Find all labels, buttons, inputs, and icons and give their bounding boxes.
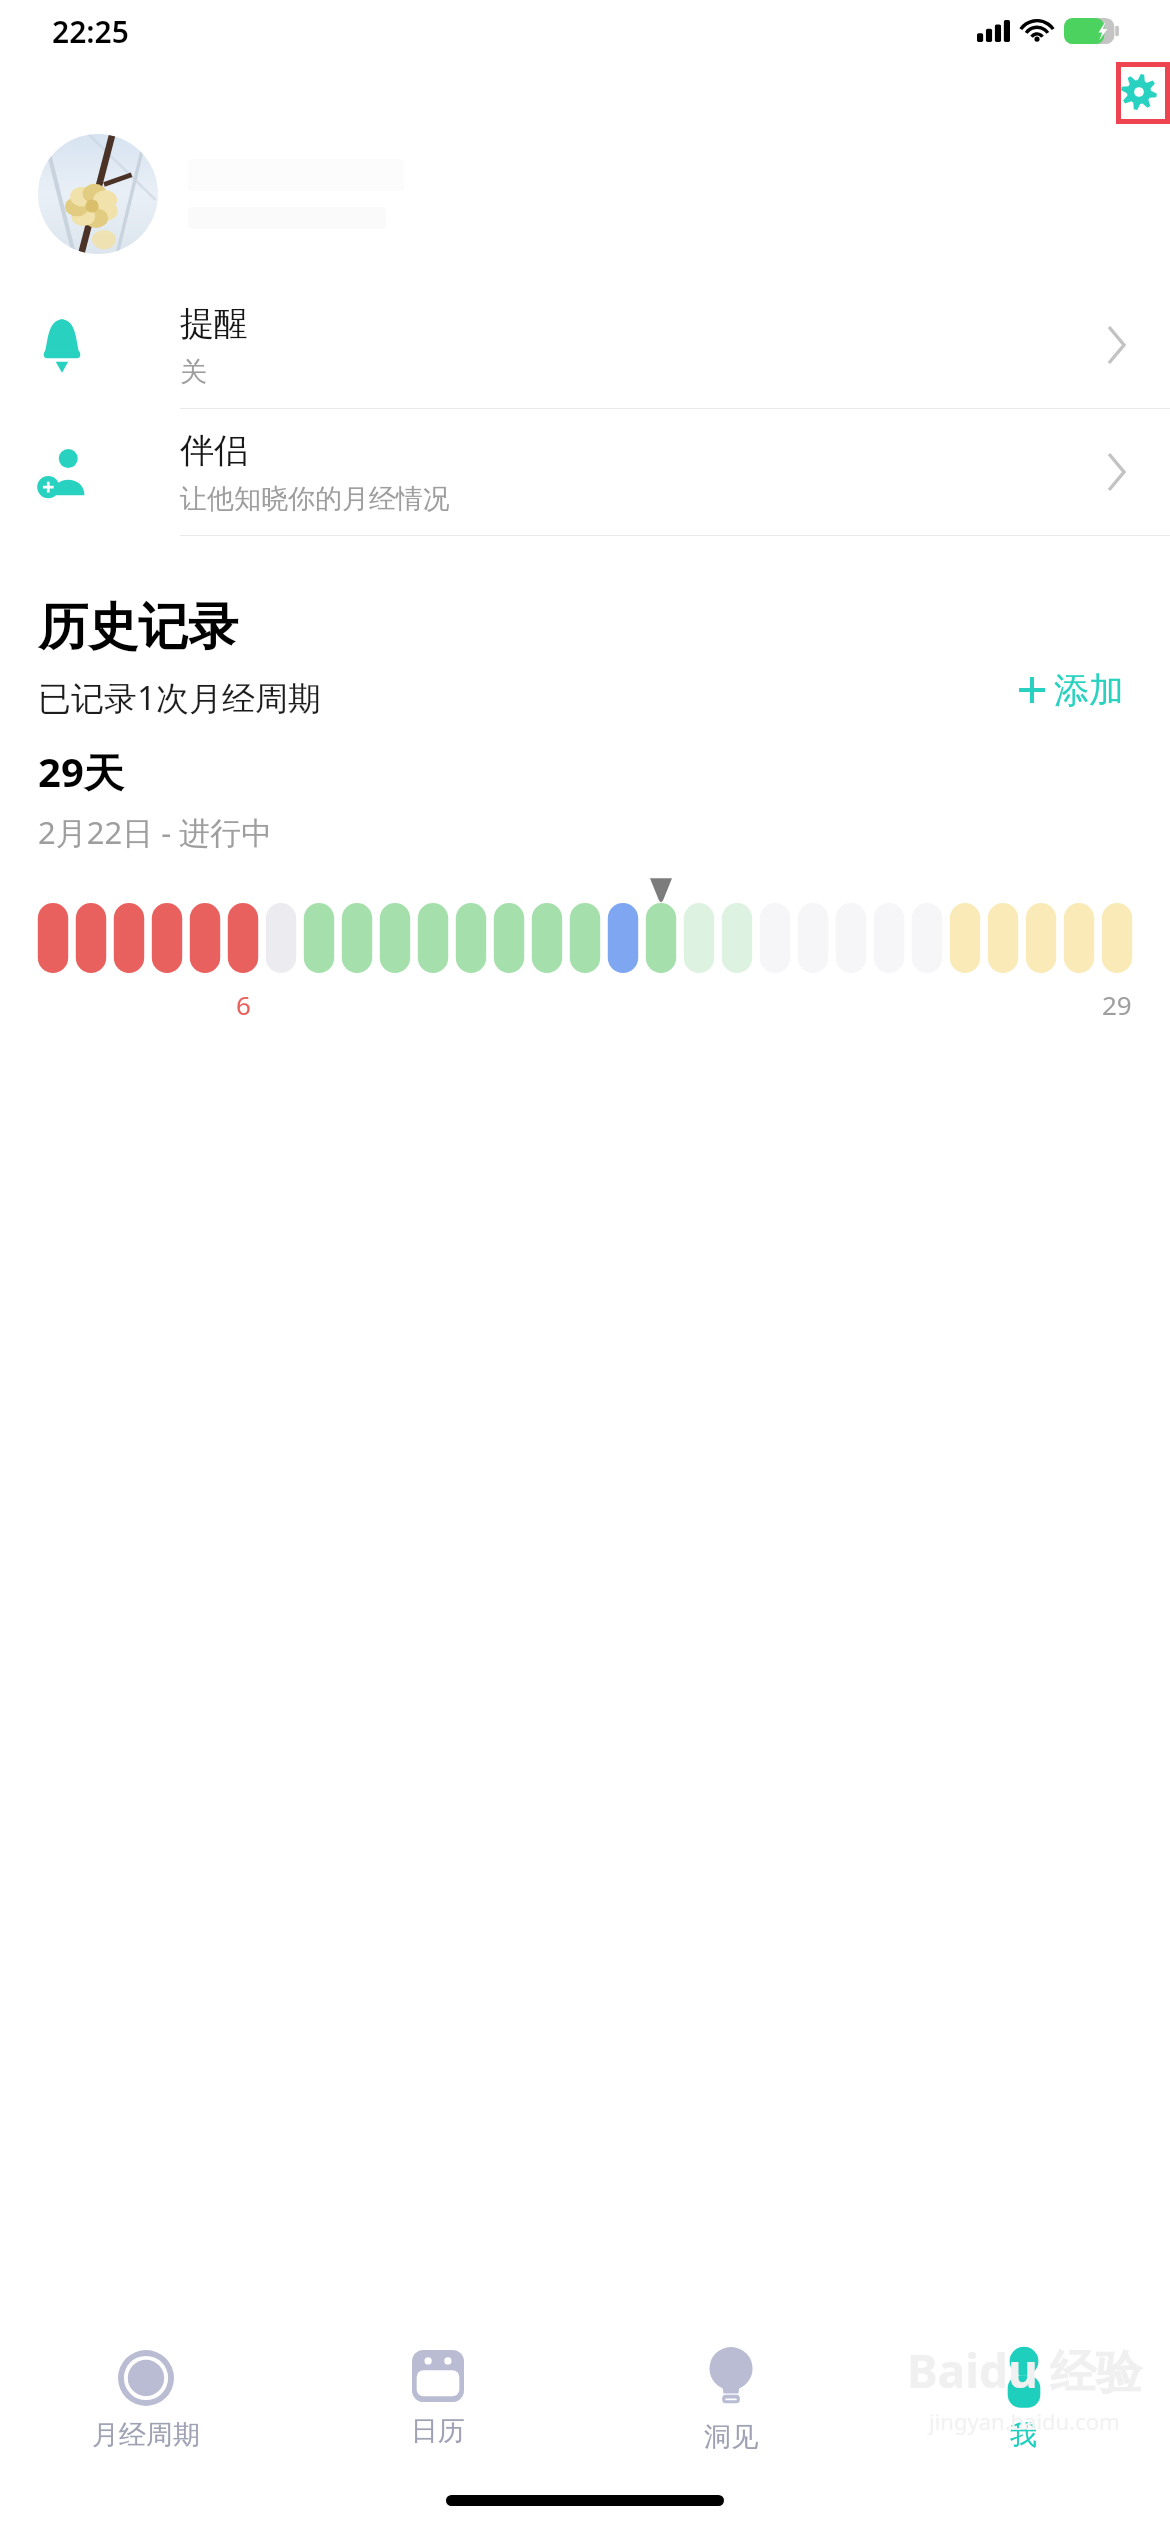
button[interactable] <box>0 134 1170 254</box>
staticText: 日历 <box>411 2414 465 2448</box>
staticText: 月经周期 <box>92 2418 200 2452</box>
button[interactable]: 洞见 <box>584 2336 877 2454</box>
staticText: 关 <box>180 355 207 389</box>
button[interactable]: 提醒 <box>0 282 1170 409</box>
button[interactable]: 29天 <box>0 744 1170 1022</box>
button[interactable]: Settings <box>1113 62 1165 122</box>
staticText: 洞见 <box>704 2420 758 2454</box>
staticText: 伴侣 <box>180 429 248 472</box>
button[interactable]: 添加 <box>1011 660 1132 720</box>
staticText: 6 <box>236 987 251 1022</box>
staticText: 提醒 <box>180 302 248 345</box>
staticText: 29 <box>1102 987 1132 1022</box>
staticText: 29天 <box>38 744 124 799</box>
staticText: 已记录1次月经周期 <box>38 675 321 720</box>
staticText: 让他知晓你的月经情况 <box>180 482 450 516</box>
button[interactable]: 我 <box>877 2336 1170 2452</box>
staticText: 我 <box>1010 2418 1037 2452</box>
staticText: 2月22日 - 进行中 <box>38 811 273 853</box>
staticText: 历史记录 <box>38 596 238 659</box>
staticText: jingyan.baidu.com <box>929 2406 1120 2436</box>
button[interactable]: 日历 <box>292 2336 584 2448</box>
staticText: 添加 <box>1054 668 1124 712</box>
button[interactable]: 伴侣 <box>0 409 1170 536</box>
button[interactable]: 月经周期 <box>0 2336 292 2452</box>
staticText: 22:25 <box>52 11 129 52</box>
staticText: Baidu 经验 <box>907 2339 1142 2402</box>
